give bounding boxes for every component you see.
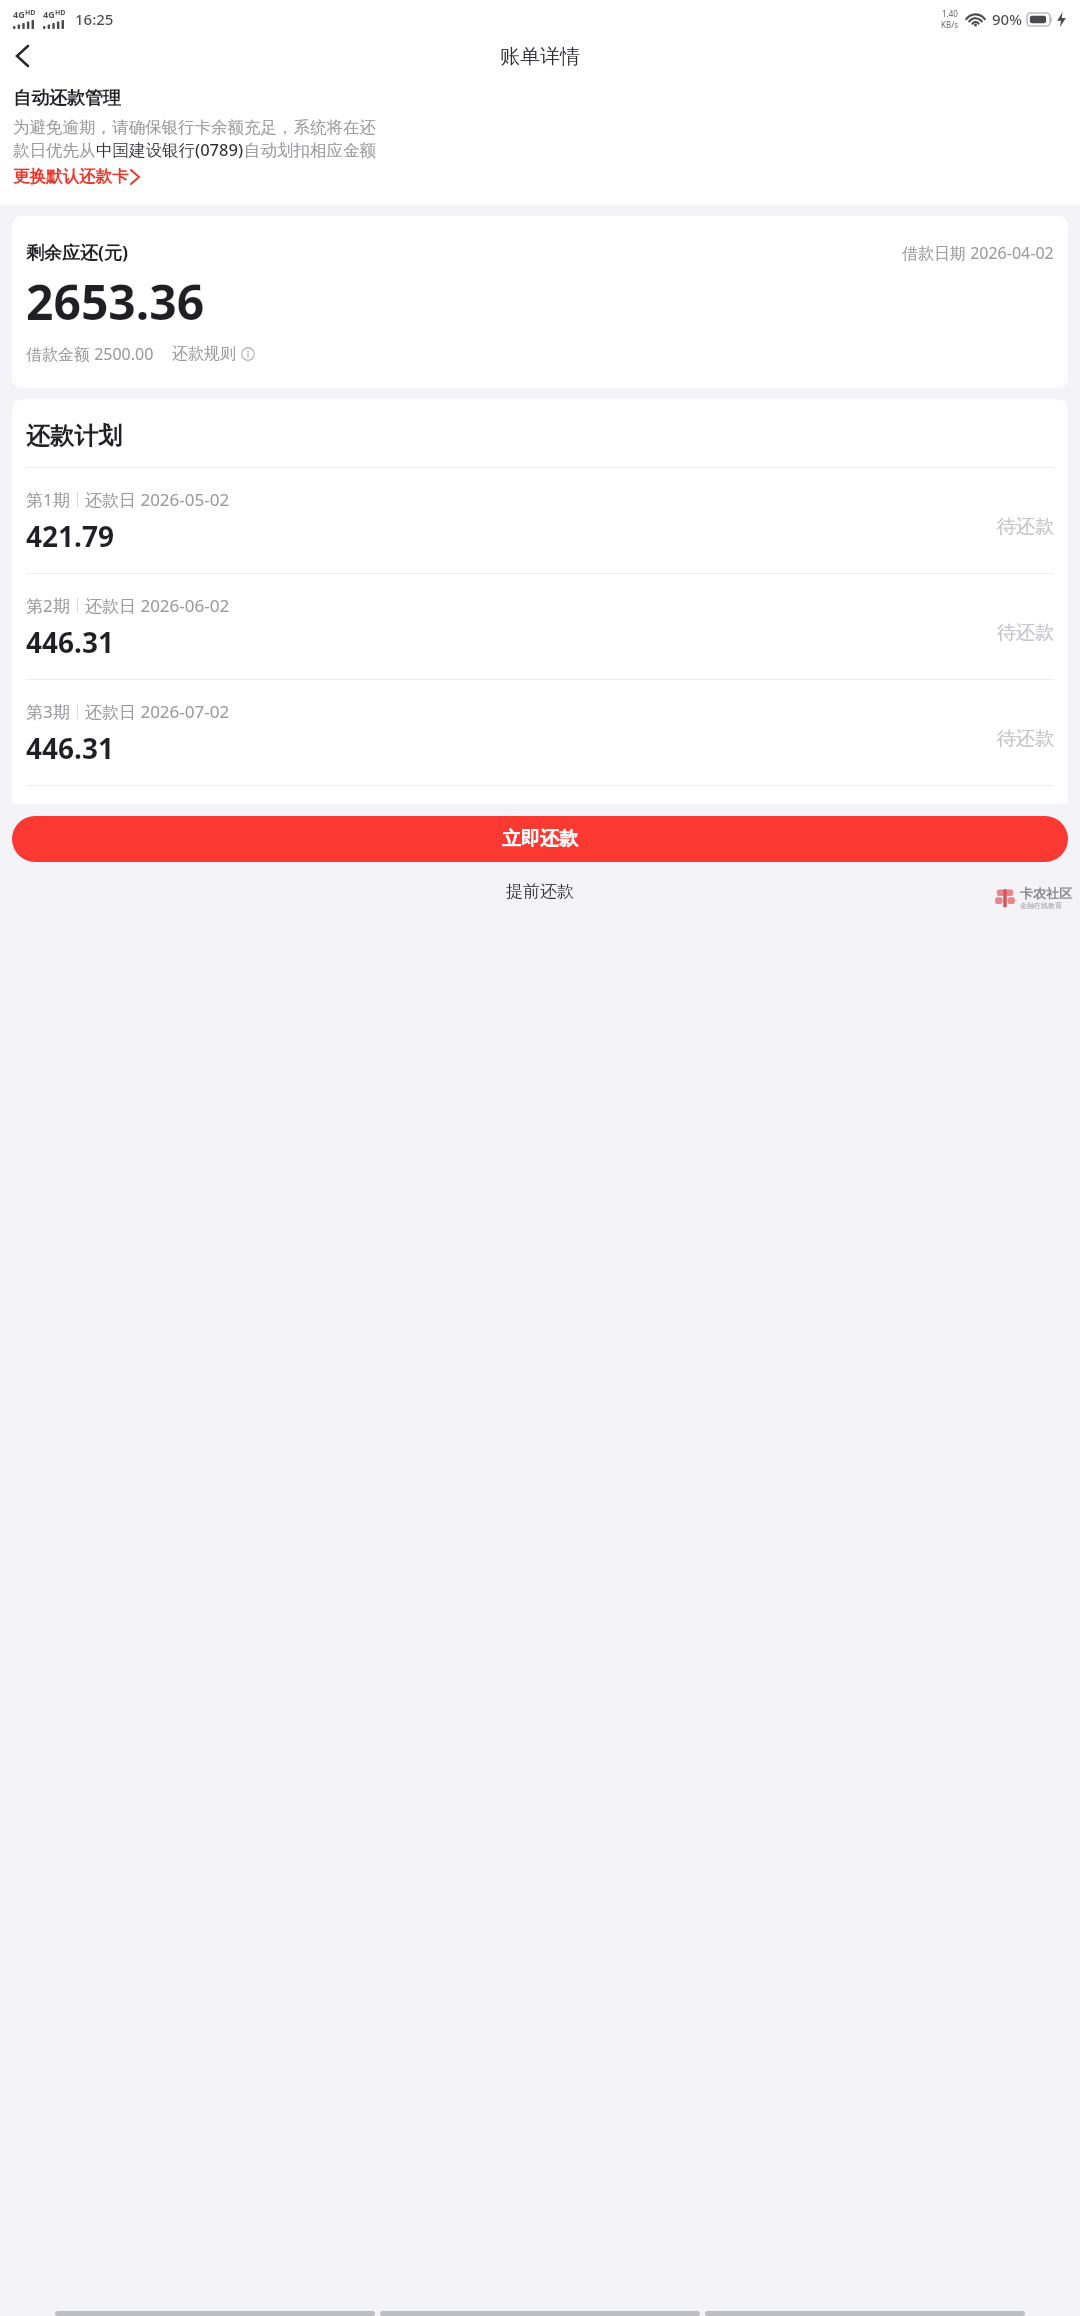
button[interactable]: 第3期 <box>26 680 1054 785</box>
staticText: 第1期 <box>26 488 70 511</box>
staticText: 还款日 2026-06-02 <box>85 594 230 617</box>
staticText: 446.31 <box>26 623 114 661</box>
staticText: 自动划扣相应金额 <box>244 140 376 161</box>
staticText: 自动还款管理 <box>13 87 121 110</box>
button[interactable]: 剩余应还(元) <box>12 216 1068 388</box>
staticText: 提前还款 <box>506 881 574 902</box>
staticText: 待还款 <box>997 727 1054 751</box>
staticText: 90% <box>992 9 1022 29</box>
staticText: KB/s <box>941 19 958 30</box>
staticText: 421.79 <box>26 517 114 555</box>
staticText: 卡农社区 <box>1020 885 1072 901</box>
staticText: 还款日 2026-07-02 <box>85 700 230 723</box>
staticText: HD <box>55 8 66 18</box>
button[interactable]: 立即还款 <box>12 816 1068 862</box>
staticText: 款日优先从 <box>13 140 96 161</box>
button[interactable]: 第2期 <box>26 574 1054 679</box>
staticText: 446.31 <box>26 729 114 767</box>
staticText: HD <box>25 8 36 18</box>
staticText: 2653.36 <box>26 269 205 334</box>
staticText: 还款计划 <box>26 421 122 451</box>
staticText: 第2期 <box>26 594 70 617</box>
staticText: 更换默认还款卡 <box>13 166 129 187</box>
staticText: 待还款 <box>997 515 1054 539</box>
staticText: 还款规则 <box>172 344 236 364</box>
button[interactable]: 还款规则 <box>172 342 255 366</box>
staticText: 为避免逾期，请确保银行卡余额充足，系统将在还 <box>13 117 376 138</box>
staticText: 第3期 <box>26 700 70 723</box>
button[interactable]: 更换默认还款卡 <box>13 164 139 189</box>
staticText: 剩余应还(元) <box>26 240 129 265</box>
staticText: 4G <box>43 8 55 20</box>
staticText: 1.40 <box>942 8 958 19</box>
button[interactable]: 返回 <box>0 37 44 75</box>
button[interactable]: 第1期 <box>26 468 1054 573</box>
staticText: 立即还款 <box>502 827 578 851</box>
staticText: 借款金额 2500.00 <box>26 343 154 365</box>
staticText: 16:25 <box>75 9 114 29</box>
staticText: 还款日 2026-05-02 <box>85 488 230 511</box>
staticText: 账单详情 <box>500 44 580 69</box>
staticText: 中国建设银行(0789) <box>96 138 244 161</box>
staticText: 待还款 <box>997 621 1054 645</box>
staticText: 4G <box>13 8 25 20</box>
button[interactable]: 提前还款 <box>488 875 592 908</box>
staticText: 金融在线教育 <box>1020 901 1062 910</box>
staticText: 借款日期 2026-04-02 <box>902 242 1054 264</box>
